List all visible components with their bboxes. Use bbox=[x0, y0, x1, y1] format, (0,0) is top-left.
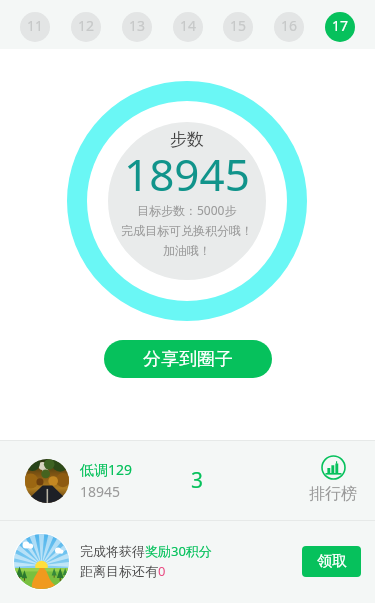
staticText: 14 bbox=[180, 16, 197, 35]
button[interactable]: 16 bbox=[274, 12, 304, 42]
staticText: 11 bbox=[27, 16, 44, 35]
button[interactable]: 13 bbox=[122, 12, 152, 42]
button[interactable]: 低调129 bbox=[0, 441, 375, 520]
staticText: 17 bbox=[332, 16, 349, 35]
staticText: 分享到圈子 bbox=[143, 348, 233, 371]
staticText: 加油哦！ bbox=[163, 243, 211, 258]
button[interactable]: 领取 bbox=[302, 546, 361, 577]
staticText: 18945 bbox=[80, 482, 121, 501]
button[interactable]: 完成将获得奖励30积分 bbox=[0, 521, 375, 603]
button[interactable]: 排行榜 bbox=[309, 455, 357, 504]
staticText: 3 bbox=[191, 466, 204, 495]
staticText: 完成将获得奖励30积分 bbox=[80, 542, 212, 560]
staticText: 16 bbox=[281, 16, 298, 35]
staticText: 步数 bbox=[170, 129, 204, 150]
staticText: 领取 bbox=[317, 552, 347, 571]
button[interactable]: 11 bbox=[20, 12, 50, 42]
staticText: 13 bbox=[129, 16, 146, 35]
button[interactable]: 分享到圈子 bbox=[104, 340, 272, 378]
button[interactable]: 14 bbox=[173, 12, 203, 42]
staticText: 排行榜 bbox=[309, 484, 357, 504]
staticText: 目标步数：5000步 bbox=[137, 202, 237, 218]
staticText: 距离目标还有0 bbox=[80, 562, 166, 580]
staticText: 15 bbox=[230, 16, 247, 35]
staticText: 完成目标可兑换积分哦！ bbox=[121, 223, 253, 238]
staticText: 低调129 bbox=[80, 460, 133, 479]
button[interactable]: 15 bbox=[223, 12, 253, 42]
staticText: 12 bbox=[78, 16, 95, 35]
button[interactable]: 17 bbox=[325, 12, 355, 42]
staticText: 18945 bbox=[124, 144, 250, 204]
button[interactable]: 12 bbox=[71, 12, 101, 42]
